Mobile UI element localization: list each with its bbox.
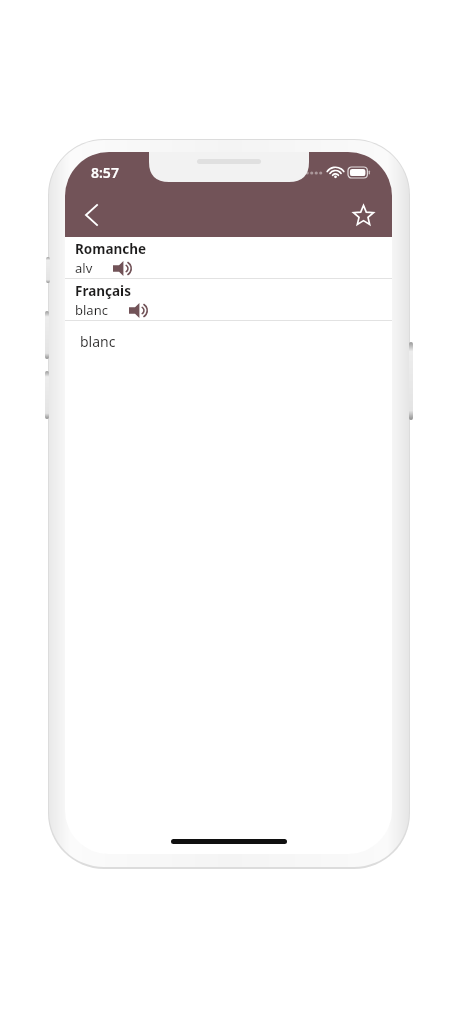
staticText: blanc	[75, 301, 108, 319]
staticText: Français	[75, 282, 131, 300]
button[interactable]: Play pronunciation	[129, 301, 151, 319]
button[interactable]: Back	[69, 193, 113, 237]
staticText: 8:57	[91, 163, 119, 182]
button[interactable]: Favourite	[341, 193, 385, 237]
staticText: blanc	[80, 332, 116, 351]
button[interactable]: Play pronunciation	[113, 259, 135, 277]
staticText: Romanche	[75, 240, 147, 258]
button[interactable]: Romanche	[65, 237, 392, 278]
button[interactable]: Français	[65, 279, 392, 320]
staticText: alv	[75, 259, 93, 277]
